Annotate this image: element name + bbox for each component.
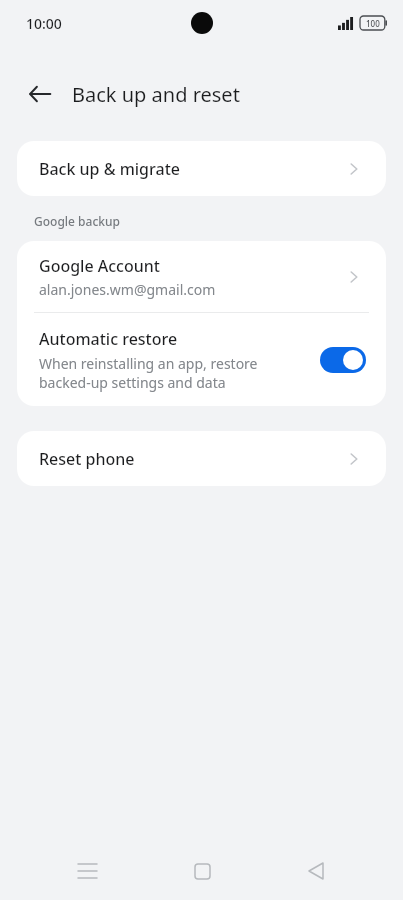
staticText: When reinstalling an app, restore backed… — [39, 354, 306, 392]
button[interactable]: Reset phone — [17, 431, 386, 486]
staticText: 100 — [366, 18, 380, 29]
staticText: alan.jones.wm@gmail.com — [39, 280, 216, 299]
button[interactable]: Automatic restore — [17, 313, 386, 406]
staticText: Google backup — [34, 213, 120, 229]
staticText: Google Account — [39, 255, 160, 277]
staticText: 10:00 — [26, 14, 62, 33]
button[interactable]: Home — [175, 844, 229, 898]
button[interactable]: Back — [289, 844, 343, 898]
staticText: Reset phone — [39, 448, 344, 470]
staticText: Back up & migrate — [39, 158, 344, 180]
button[interactable]: Automatic restore toggle — [320, 347, 366, 373]
staticText: Automatic restore — [39, 328, 178, 350]
staticText: Back up and reset — [72, 81, 240, 108]
button[interactable]: Back — [18, 72, 62, 116]
button[interactable]: Back up & migrate — [17, 141, 386, 196]
button[interactable]: Recent apps — [60, 844, 114, 898]
button[interactable]: Google Account — [17, 241, 386, 312]
